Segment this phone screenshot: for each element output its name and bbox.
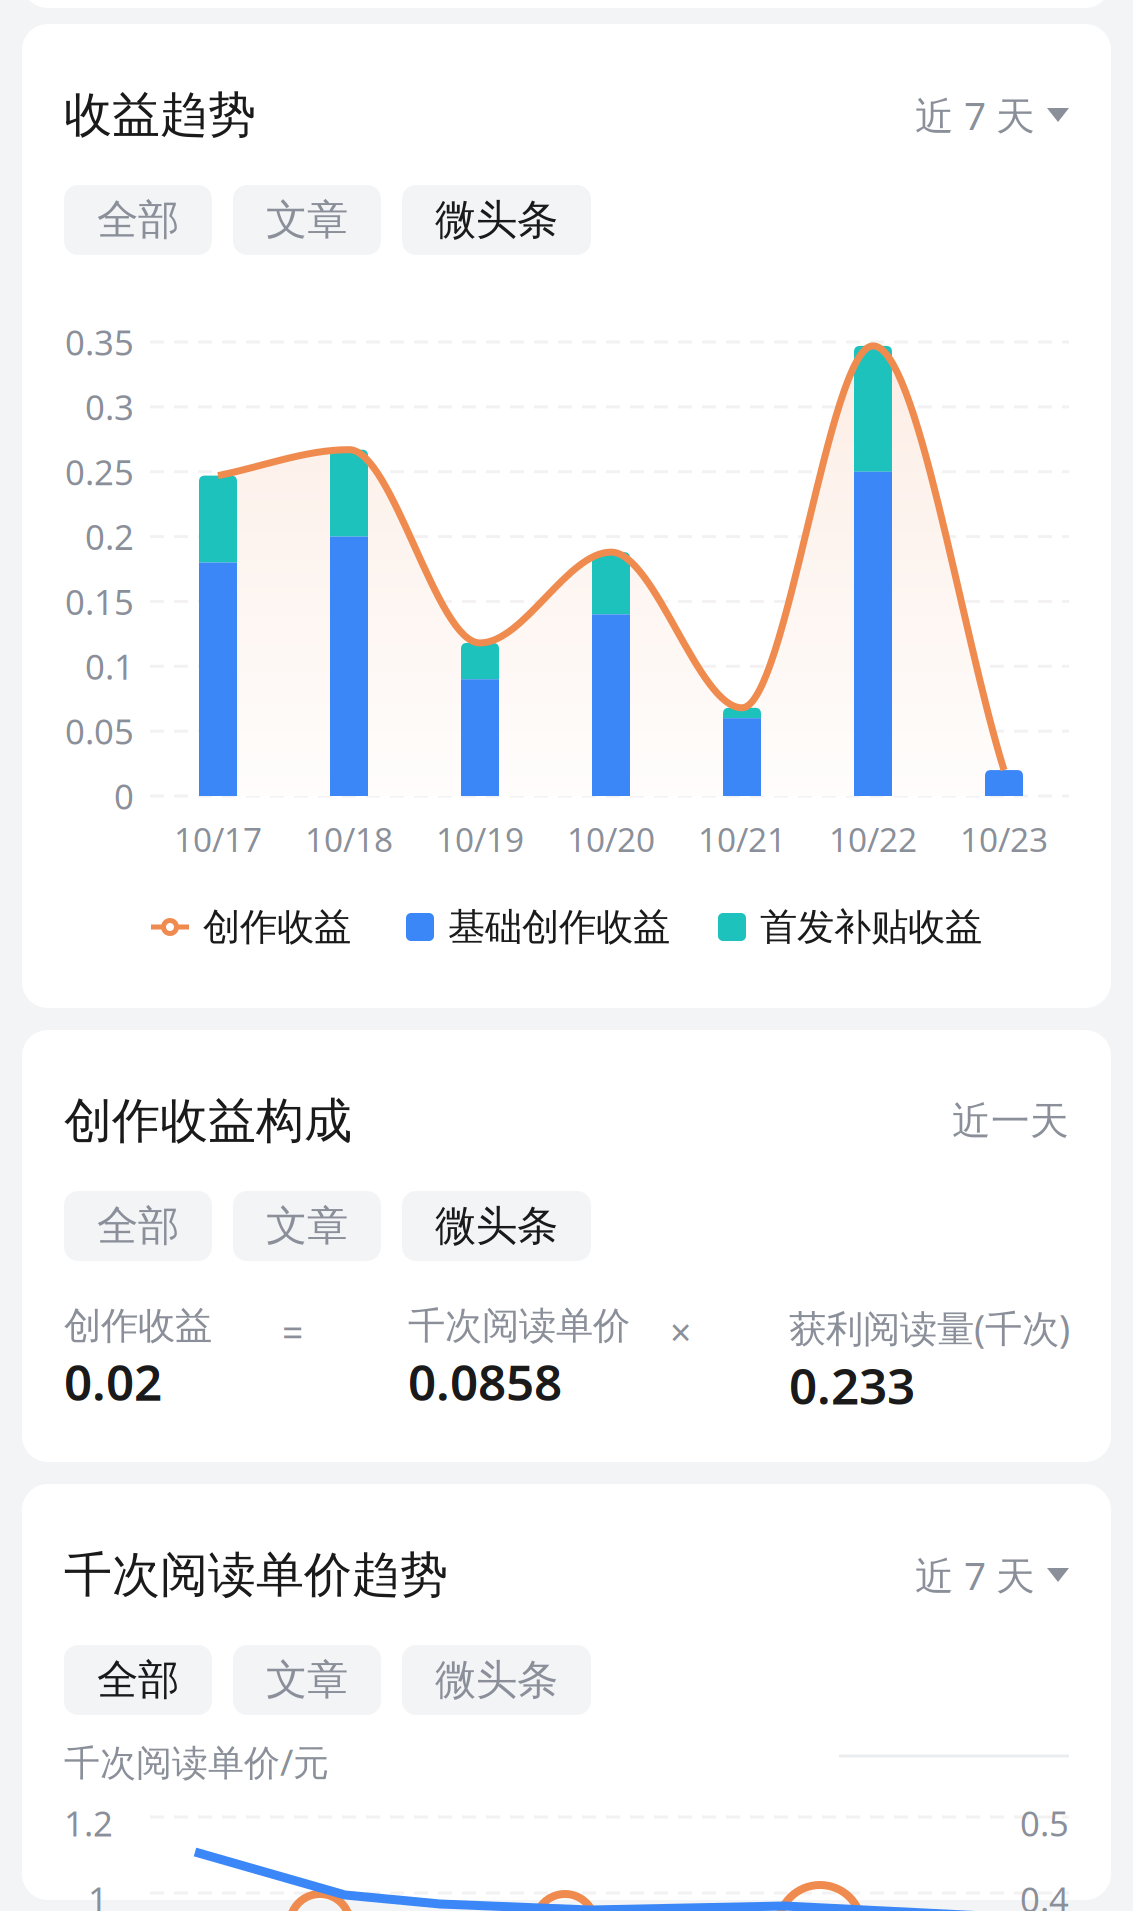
staticText: 0.5 bbox=[1020, 1800, 1069, 1846]
staticText: 0 bbox=[114, 773, 134, 819]
staticText: 创作收益 bbox=[64, 1303, 212, 1349]
staticText: 创作收益构成 bbox=[64, 1091, 352, 1150]
staticText: 0.3 bbox=[85, 384, 134, 430]
button[interactable]: 文章 bbox=[233, 1645, 381, 1715]
staticText: 0.05 bbox=[65, 708, 134, 754]
button[interactable]: 微头条 bbox=[402, 1191, 591, 1261]
staticText: 文章 bbox=[266, 195, 348, 245]
staticText: 近 7 天 bbox=[915, 89, 1035, 141]
staticText: 0.15 bbox=[65, 578, 134, 624]
staticText: 0.02 bbox=[64, 1349, 162, 1414]
staticText: 文章 bbox=[266, 1655, 348, 1705]
staticText: 0.2 bbox=[85, 514, 134, 560]
staticText: 1.2 bbox=[64, 1800, 113, 1846]
staticText: 0.0858 bbox=[408, 1349, 562, 1414]
button[interactable]: 近一天 bbox=[952, 1097, 1069, 1145]
staticText: 收益趋势 bbox=[64, 85, 256, 144]
staticText: 基础创作收益 bbox=[448, 904, 670, 950]
button[interactable]: 全部 bbox=[64, 1191, 212, 1261]
staticText: 10/18 bbox=[305, 817, 393, 861]
staticText: 全部 bbox=[97, 1201, 179, 1251]
staticText: 10/20 bbox=[567, 817, 655, 861]
staticText: 微头条 bbox=[435, 1655, 558, 1705]
staticText: 近一天 bbox=[952, 1097, 1069, 1145]
staticText: 微头条 bbox=[435, 195, 558, 245]
staticText: 0.35 bbox=[65, 319, 134, 365]
staticText: 千次阅读单价趋势 bbox=[64, 1545, 448, 1604]
staticText: 0.4 bbox=[1020, 1876, 1069, 1911]
staticText: 1 bbox=[88, 1876, 108, 1911]
staticText: 10/21 bbox=[698, 817, 786, 861]
staticText: 10/19 bbox=[436, 817, 524, 861]
button[interactable]: 近 7 天 bbox=[915, 1549, 1069, 1601]
button[interactable]: 全部 bbox=[64, 185, 212, 255]
button[interactable]: 全部 bbox=[64, 1645, 212, 1715]
staticText: 0.233 bbox=[789, 1353, 915, 1418]
staticText: 微头条 bbox=[435, 1201, 558, 1251]
staticText: × bbox=[670, 1307, 691, 1357]
staticText: 全部 bbox=[97, 1655, 179, 1705]
staticText: 0.25 bbox=[65, 449, 134, 495]
staticText: 0.1 bbox=[85, 643, 134, 689]
staticText: 获利阅读量(千次) bbox=[789, 1303, 1070, 1353]
staticText: 全部 bbox=[97, 195, 179, 245]
staticText: 文章 bbox=[266, 1201, 348, 1251]
staticText: 千次阅读单价 bbox=[408, 1303, 630, 1349]
button[interactable]: 文章 bbox=[233, 185, 381, 255]
button[interactable]: 微头条 bbox=[402, 185, 591, 255]
staticText: 近 7 天 bbox=[915, 1549, 1035, 1601]
staticText: 创作收益 bbox=[203, 904, 351, 950]
button[interactable]: 文章 bbox=[233, 1191, 381, 1261]
staticText: 10/23 bbox=[960, 817, 1048, 861]
staticText: 10/22 bbox=[829, 817, 917, 861]
button[interactable]: 近 7 天 bbox=[915, 89, 1069, 141]
staticText: 10/17 bbox=[174, 817, 262, 861]
staticText: 首发补贴收益 bbox=[760, 904, 982, 950]
button[interactable]: 微头条 bbox=[402, 1645, 591, 1715]
staticText: 千次阅读单价/元 bbox=[64, 1738, 329, 1786]
staticText: = bbox=[282, 1307, 303, 1357]
